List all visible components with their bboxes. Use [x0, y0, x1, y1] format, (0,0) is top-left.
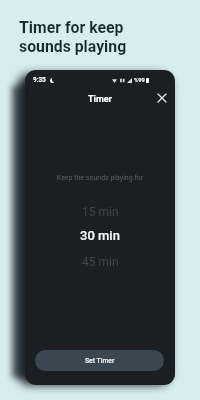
button[interactable]: 15 min [25, 201, 175, 223]
staticText: sounds playing [19, 37, 127, 56]
button[interactable]: Set Timer [35, 350, 164, 371]
staticText: 45 min [82, 255, 119, 269]
staticText: 9:35 [33, 76, 46, 84]
staticText: Keep the sounds playing for [25, 174, 175, 182]
staticText: %99 [134, 77, 145, 84]
staticText: Timer for keep [19, 18, 124, 37]
staticText: Timer [88, 94, 112, 105]
staticText: 30 min [80, 228, 120, 243]
staticText: 15 min [82, 205, 119, 219]
button[interactable]: 30 min [25, 224, 175, 246]
button[interactable]: 45 min [25, 251, 175, 273]
button[interactable]: Close [156, 92, 168, 104]
staticText: Set Timer [85, 357, 115, 365]
